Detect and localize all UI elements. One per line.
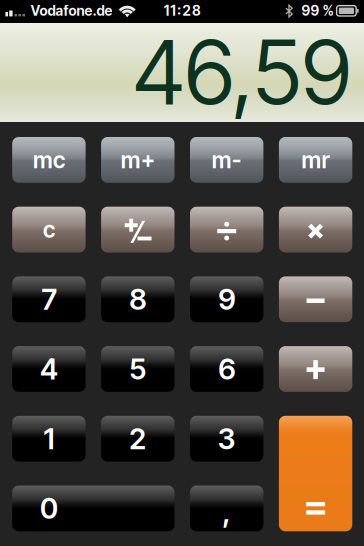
- button[interactable]: m+: [101, 137, 174, 183]
- staticText: 1: [43, 421, 54, 456]
- button[interactable]: c: [12, 207, 86, 252]
- button[interactable]: Minus: [279, 276, 352, 322]
- staticText: mr: [302, 146, 330, 174]
- staticText: 99 %: [301, 2, 333, 19]
- staticText: 2: [129, 421, 146, 456]
- staticText: Vodafone.de: [30, 2, 112, 19]
- button[interactable]: Divide: [190, 207, 263, 252]
- button[interactable]: 7: [12, 276, 86, 322]
- button[interactable]: mr: [279, 137, 352, 183]
- staticText: 6: [218, 352, 235, 386]
- button[interactable]: mc: [12, 137, 86, 183]
- staticText: 46,59: [132, 19, 351, 125]
- staticText: 9: [218, 282, 235, 317]
- button[interactable]: 6: [190, 346, 263, 392]
- button[interactable]: Plus: [279, 346, 352, 392]
- button[interactable]: 8: [101, 276, 174, 322]
- button[interactable]: 3: [190, 416, 263, 462]
- staticText: 0: [40, 491, 58, 526]
- staticText: 5: [129, 352, 146, 386]
- button[interactable]: Plus minus: [101, 207, 174, 252]
- button[interactable]: 1: [12, 416, 86, 462]
- staticText: 11:28: [164, 2, 201, 19]
- staticText: m+: [121, 146, 155, 174]
- button[interactable]: 5: [101, 346, 174, 392]
- button[interactable]: 0: [12, 485, 174, 531]
- staticText: 4: [40, 352, 58, 386]
- button[interactable]: Equals: [279, 416, 352, 531]
- staticText: ,: [222, 495, 231, 530]
- staticText: m-: [212, 146, 242, 174]
- staticText: 3: [218, 421, 236, 456]
- button[interactable]: m-: [190, 137, 263, 183]
- staticText: c: [43, 216, 55, 243]
- staticText: mc: [33, 146, 65, 174]
- button[interactable]: ,: [190, 485, 263, 531]
- button[interactable]: 2: [101, 416, 174, 462]
- staticText: 7: [41, 282, 56, 317]
- staticText: 8: [129, 282, 146, 317]
- button[interactable]: Multiply: [279, 207, 352, 252]
- button[interactable]: 4: [12, 346, 86, 392]
- button[interactable]: 9: [190, 276, 263, 322]
